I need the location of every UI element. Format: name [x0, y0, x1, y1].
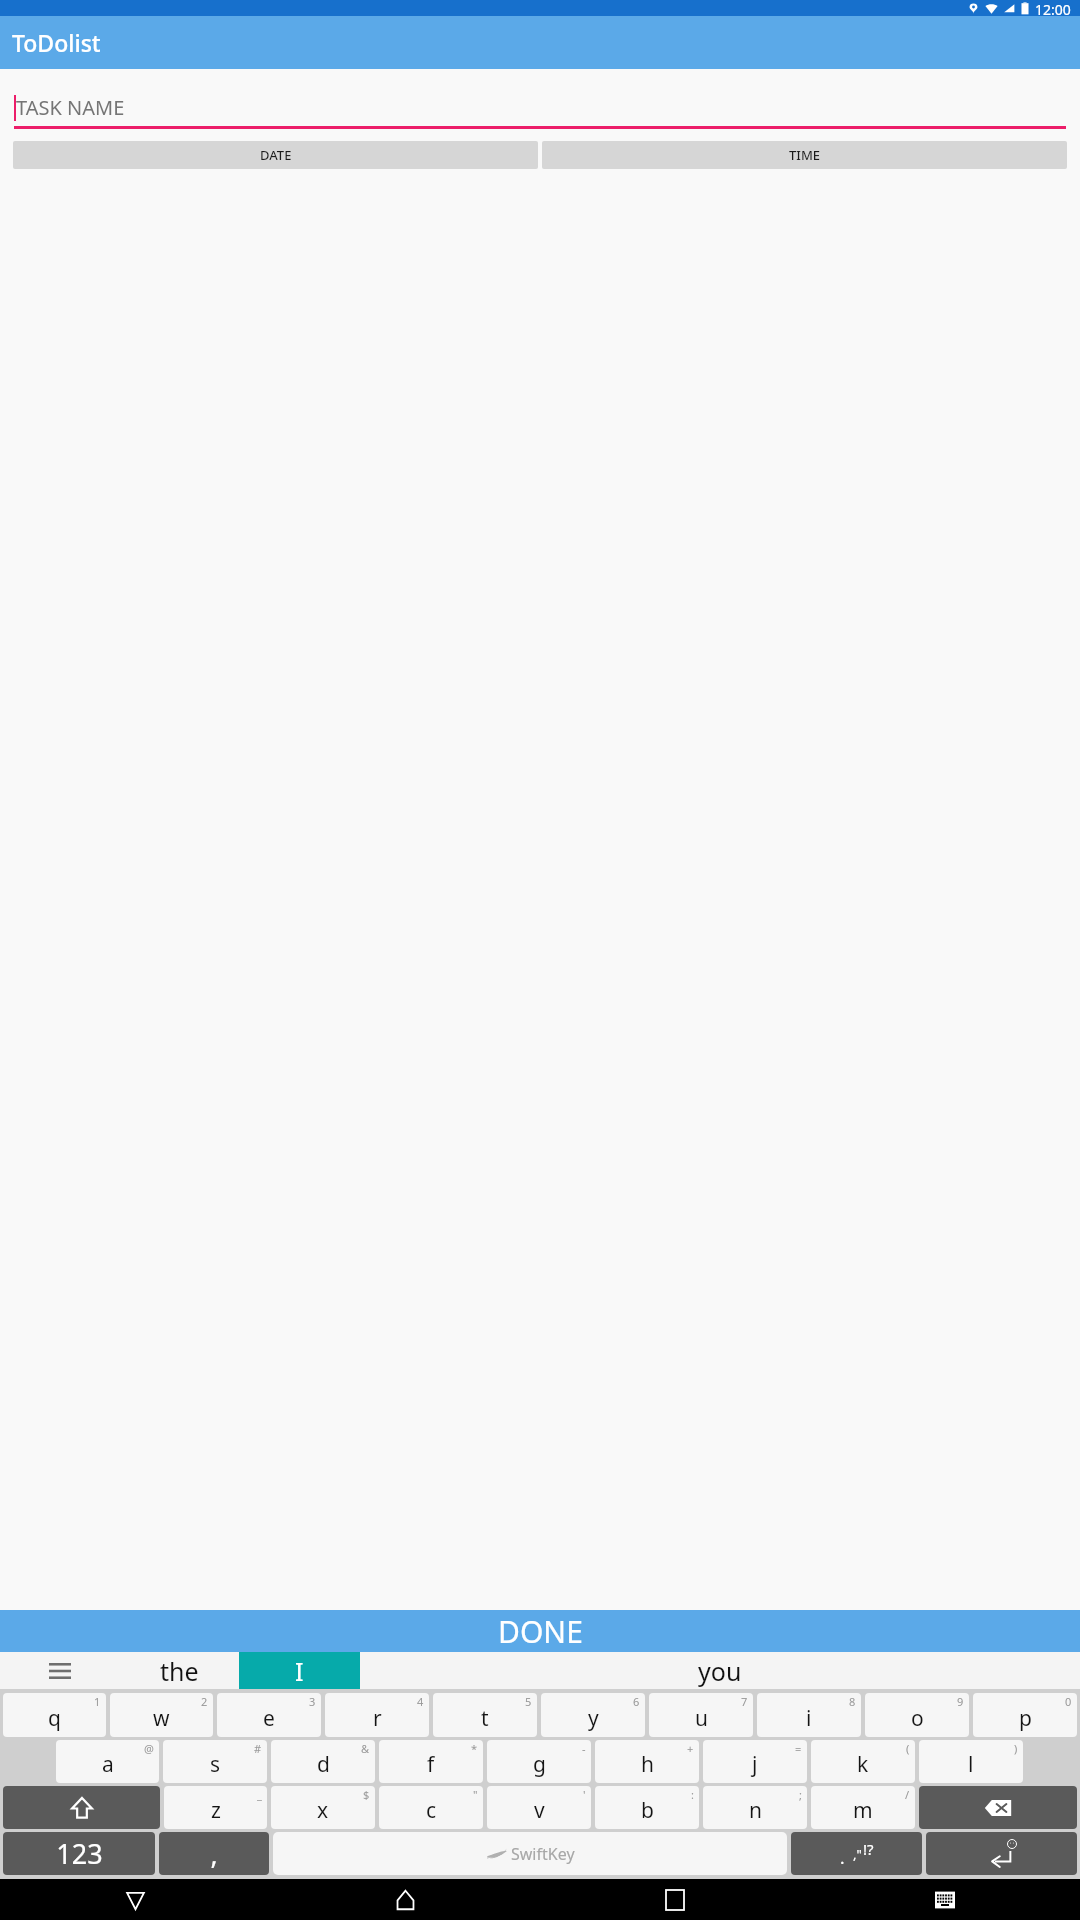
staticText: c — [426, 1796, 437, 1825]
staticText: ) — [1014, 1741, 1018, 1756]
button[interactable]: ( — [811, 1740, 915, 1783]
button[interactable]: Enter — [926, 1832, 1077, 1875]
button[interactable]: 9 — [865, 1693, 969, 1737]
button[interactable]: * — [379, 1740, 483, 1783]
staticText: s — [210, 1750, 221, 1779]
button[interactable]: TASK NAME — [14, 91, 1066, 123]
staticText: 3 — [309, 1694, 316, 1709]
staticText: ' — [583, 1787, 586, 1802]
staticText: p — [1019, 1704, 1032, 1733]
staticText: SwiftKey — [511, 1843, 575, 1865]
button[interactable]: DONE — [0, 1610, 1080, 1652]
staticText: DATE — [260, 146, 292, 164]
staticText: ToDolist — [12, 27, 101, 58]
button[interactable]: Switch keyboard — [810, 1879, 1080, 1920]
button[interactable]: ; — [703, 1786, 807, 1829]
button[interactable]: # — [163, 1740, 267, 1783]
staticText: o — [911, 1704, 924, 1733]
button[interactable]: 8 — [757, 1693, 861, 1737]
button[interactable]: , — [159, 1832, 269, 1875]
staticText: d — [317, 1750, 330, 1779]
staticText: " — [473, 1787, 478, 1802]
button[interactable]: DATE — [13, 141, 538, 169]
button[interactable]: 7 — [649, 1693, 753, 1737]
staticText: 12:00 — [1035, 0, 1071, 16]
staticText: # — [254, 1741, 262, 1756]
button[interactable]: 2 — [110, 1693, 213, 1737]
button[interactable]: Space — [273, 1832, 787, 1875]
staticText: y — [588, 1704, 599, 1733]
button[interactable]: Backspace — [919, 1786, 1077, 1829]
button[interactable]: TIME — [542, 141, 1067, 169]
button[interactable]: Recents — [540, 1879, 810, 1920]
button[interactable]: 5 — [433, 1693, 537, 1737]
staticText: !? — [863, 1839, 874, 1859]
button[interactable]: Shift — [3, 1786, 160, 1829]
staticText: you — [698, 1654, 742, 1688]
staticText: t — [481, 1704, 489, 1733]
button[interactable]: + — [595, 1740, 699, 1783]
button[interactable]: you — [360, 1652, 1080, 1689]
button[interactable]: 123 — [3, 1832, 155, 1875]
button[interactable]: _ — [164, 1786, 267, 1829]
staticText: 2 — [201, 1694, 208, 1709]
button[interactable]: = — [703, 1740, 807, 1783]
staticText: x — [317, 1796, 329, 1825]
button[interactable]: - — [487, 1740, 591, 1783]
staticText: n — [749, 1796, 762, 1825]
staticText: the — [160, 1654, 199, 1688]
staticText: & — [361, 1741, 370, 1756]
staticText: 5 — [525, 1694, 532, 1709]
staticText: _ — [257, 1787, 262, 1802]
staticText: g — [533, 1750, 546, 1779]
staticText: ," — [853, 1845, 862, 1863]
button[interactable]: : — [595, 1786, 699, 1829]
button[interactable]: Home — [270, 1879, 540, 1920]
button[interactable]: 6 — [541, 1693, 645, 1737]
staticText: 9 — [957, 1694, 964, 1709]
staticText: j — [752, 1750, 758, 1779]
staticText: DONE — [498, 1611, 583, 1652]
staticText: @ — [144, 1741, 154, 1756]
staticText: r — [373, 1704, 382, 1733]
button[interactable]: 0 — [973, 1693, 1077, 1737]
button[interactable]: I — [239, 1652, 360, 1689]
button[interactable]: Punctuation — [791, 1832, 922, 1875]
staticText: e — [263, 1704, 275, 1733]
staticText: u — [695, 1704, 708, 1733]
staticText: 1 — [94, 1694, 101, 1709]
button[interactable]: $ — [271, 1786, 375, 1829]
staticText: : — [691, 1787, 694, 1802]
button[interactable]: Back — [0, 1879, 270, 1920]
button[interactable]: & — [271, 1740, 375, 1783]
staticText: 8 — [849, 1694, 856, 1709]
button[interactable]: the — [119, 1652, 239, 1689]
staticText: v — [534, 1796, 545, 1825]
button[interactable]: ) — [919, 1740, 1023, 1783]
staticText: 123 — [56, 1835, 103, 1872]
button[interactable]: Menu — [0, 1652, 119, 1689]
staticText: I — [295, 1654, 304, 1688]
button[interactable]: 3 — [217, 1693, 321, 1737]
staticText: ; — [799, 1787, 802, 1802]
staticText: $ — [363, 1787, 370, 1802]
button[interactable]: @ — [56, 1740, 159, 1783]
staticText: - — [582, 1741, 586, 1756]
staticText: TASK NAME — [16, 94, 125, 121]
staticText: * — [471, 1741, 478, 1756]
staticText: b — [641, 1796, 654, 1825]
button[interactable]: " — [379, 1786, 483, 1829]
staticText: 0 — [1065, 1694, 1072, 1709]
staticText: , — [210, 1835, 218, 1872]
button[interactable]: ' — [487, 1786, 591, 1829]
staticText: / — [905, 1787, 910, 1802]
staticText: TIME — [789, 146, 821, 164]
button[interactable]: 1 — [3, 1693, 106, 1737]
button[interactable]: / — [811, 1786, 915, 1829]
staticText: 4 — [417, 1694, 424, 1709]
staticText: q — [48, 1704, 61, 1733]
staticText: h — [641, 1750, 654, 1779]
button[interactable]: 4 — [325, 1693, 429, 1737]
staticText: f — [427, 1750, 435, 1779]
staticText: ( — [906, 1741, 910, 1756]
